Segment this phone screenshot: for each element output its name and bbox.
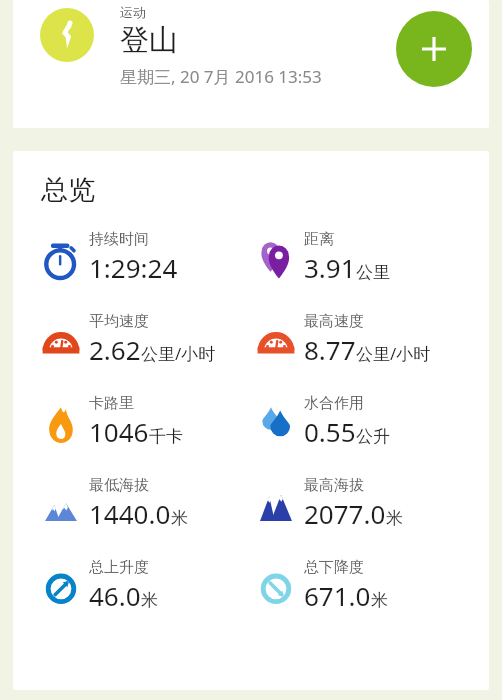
button[interactable]: 最高速度	[255, 312, 489, 367]
staticText: 0.55	[304, 414, 356, 449]
staticText: 3.91	[304, 250, 356, 285]
staticText: 1:29:24	[89, 250, 178, 285]
staticText: 1440.0	[89, 496, 171, 531]
staticText: 米	[141, 590, 158, 611]
staticText: 最高速度	[304, 312, 364, 331]
staticText: 公里/小时	[356, 342, 431, 365]
staticText: 星期三, 20 7月 2016 13:53	[120, 65, 322, 88]
staticText: 总览	[41, 173, 95, 207]
staticText: 总上升度	[89, 558, 149, 577]
button[interactable]: Add	[396, 11, 472, 87]
staticText: 水合作用	[304, 394, 364, 413]
staticText: 公里/小时	[141, 342, 216, 365]
staticText: 8.77	[304, 332, 356, 367]
staticText: 671.0	[304, 578, 371, 613]
staticText: 千卡	[149, 426, 183, 447]
staticText: 公升	[356, 426, 390, 447]
staticText: 平均速度	[89, 312, 149, 331]
staticText: 2077.0	[304, 496, 386, 531]
staticText: 米	[386, 508, 403, 529]
button[interactable]: 水合作用	[255, 394, 489, 449]
button[interactable]: 最低海拔	[40, 476, 251, 531]
staticText: 运动	[120, 4, 146, 20]
staticText: 2.62	[89, 332, 141, 367]
button[interactable]: 总下降度	[255, 558, 489, 613]
button[interactable]: 卡路里	[40, 394, 251, 449]
button[interactable]: 距离	[255, 230, 489, 285]
button[interactable]: 平均速度	[40, 312, 251, 367]
button[interactable]: 总上升度	[40, 558, 251, 613]
staticText: 46.0	[89, 578, 141, 613]
staticText: 米	[171, 508, 188, 529]
staticText: 距离	[304, 230, 334, 249]
staticText: 登山	[120, 22, 178, 59]
staticText: 米	[371, 590, 388, 611]
staticText: 持续时间	[89, 230, 149, 249]
button[interactable]: 运动	[13, 0, 489, 128]
staticText: 总下降度	[304, 558, 364, 577]
button[interactable]: 最高海拔	[255, 476, 489, 531]
button[interactable]: 持续时间	[40, 230, 251, 285]
staticText: 公里	[356, 262, 390, 283]
staticText: 最高海拔	[304, 476, 364, 495]
staticText: 最低海拔	[89, 476, 149, 495]
staticText: 卡路里	[89, 394, 134, 413]
staticText: 1046	[89, 414, 149, 449]
